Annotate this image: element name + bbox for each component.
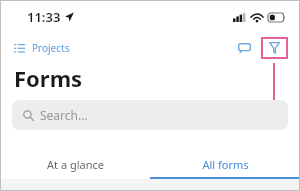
staticText: At a glance bbox=[47, 157, 104, 172]
button[interactable]: At a glance bbox=[0, 151, 150, 177]
staticText: Search... bbox=[40, 107, 88, 123]
button[interactable]: Comments bbox=[233, 37, 255, 59]
button[interactable]: All forms bbox=[150, 151, 300, 177]
button[interactable]: Projects bbox=[14, 41, 70, 55]
staticText: All forms bbox=[202, 157, 249, 172]
staticText: Forms bbox=[14, 63, 83, 93]
button[interactable]: Search... bbox=[12, 100, 288, 130]
staticText: 11:33 bbox=[27, 8, 61, 26]
button[interactable]: Filter bbox=[261, 37, 288, 59]
staticText: Projects bbox=[32, 41, 70, 55]
